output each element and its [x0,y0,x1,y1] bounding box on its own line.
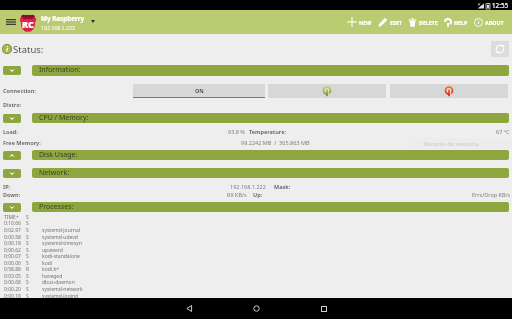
staticText: My Raspberry [41,14,85,23]
staticText: S [26,214,29,221]
button[interactable]: Menu [4,15,18,29]
staticText: Errs/Drop KB/s [472,191,511,198]
staticText: systemd-journal [42,227,80,234]
button[interactable]: NEW [344,10,375,34]
staticText: 0:02.97 [4,227,21,234]
button[interactable]: Processes: [32,202,509,212]
staticText: 192.168.1.222 [41,24,75,31]
staticText: 0:00.58 [4,234,21,241]
button[interactable]: CPU / Memory: [32,113,509,123]
staticText: RX KB/s [227,191,247,198]
staticText: Down: [3,191,21,198]
staticText: S [26,220,29,227]
button[interactable]: Expand Information: [3,66,21,75]
button[interactable]: Reboot [268,84,386,98]
staticText: 0:00.06 [4,260,21,267]
staticText: S [26,260,29,267]
button[interactable]: Information: [32,65,509,76]
staticText: 0:00.18 [4,240,21,247]
button[interactable]: Collapse Disk Usage: [3,151,21,160]
staticText: upowerd [42,247,63,254]
staticText: 0:00.62 [4,247,21,254]
staticText: DELETE [419,19,438,26]
staticText: 0:03.05 [4,273,21,280]
button[interactable]: HELP [441,10,471,34]
staticText: Processes: [39,202,74,211]
staticText: ON [195,87,204,94]
button[interactable]: Expand CPU / Memory: [3,114,21,123]
button[interactable]: ON [133,84,265,98]
staticText: 0:00.18 [4,293,21,300]
staticText: Distro: [3,101,22,108]
staticText: systemd-network [42,286,83,293]
button[interactable]: Refresh [491,41,509,57]
button[interactable]: Expand Processes: [3,203,21,212]
staticText: S [26,253,29,260]
staticText: Load: [3,128,18,135]
staticText: TIME+ [4,214,19,221]
staticText: kodi [42,260,53,267]
staticText: Information: [39,65,81,75]
staticText: haveged [42,273,63,280]
staticText: HELP [454,19,468,26]
staticText: 67 °C [496,128,510,135]
staticText: S [26,286,29,293]
staticText: S [26,273,29,280]
staticText: S [26,240,29,247]
staticText: kodi.b+ [42,266,60,273]
staticText: S [26,247,29,254]
button[interactable]: ABOUT [471,10,507,34]
staticText: Up: [253,191,263,198]
staticText: Disk Usage: [39,150,78,159]
staticText: 99.2242 MB / 305.863 MB [241,139,310,146]
staticText: S [26,279,29,286]
staticText: dbus-daemon [42,279,75,286]
staticText: R [26,266,30,273]
staticText: systemd-udevd [42,234,78,241]
staticText: 12:55 [492,1,509,10]
button[interactable]: Home [223,298,290,319]
button[interactable]: Back [156,298,223,319]
staticText: Status: [13,43,44,56]
staticText: 192.168.1.222 [230,183,266,190]
staticText: CPU / Memory: [39,113,89,122]
staticText: 0:10.66 [4,220,21,227]
staticText: Temperature: [249,128,286,135]
button[interactable]: Choose device [89,17,97,25]
staticText: Free Memory: [3,139,41,146]
staticText: kodi-standalone [42,253,80,260]
staticText: EDIT [390,19,402,26]
staticText: Network: [39,168,70,177]
staticText: 93.8 % [228,128,245,135]
staticText: S [26,227,29,234]
staticText: S [26,293,29,300]
staticText: 0:00.20 [4,286,21,293]
staticText: 0:00.68 [4,279,21,286]
staticText: S [26,234,29,241]
button[interactable]: EDIT [375,10,405,34]
staticText: Connection: [3,87,36,94]
button[interactable]: DELETE [405,10,441,34]
staticText: IP: [3,183,11,190]
staticText: systemd-timesyn [42,240,82,247]
staticText: RC [22,18,34,30]
button[interactable]: Disk Usage: [32,150,509,160]
staticText: Mask: [274,183,291,190]
staticText: NEW [359,19,372,26]
button[interactable]: Recents [290,298,357,319]
staticText: 0:58.88 [4,266,21,273]
button[interactable]: Network: [32,168,509,178]
staticText: Recorte de ventana [424,140,479,148]
staticText: systemd-logind [42,293,79,300]
staticText: ABOUT [485,19,504,26]
button[interactable]: Shutdown [390,84,508,98]
button[interactable]: Expand Network: [3,169,21,178]
staticText: 0:00.07 [4,253,21,260]
